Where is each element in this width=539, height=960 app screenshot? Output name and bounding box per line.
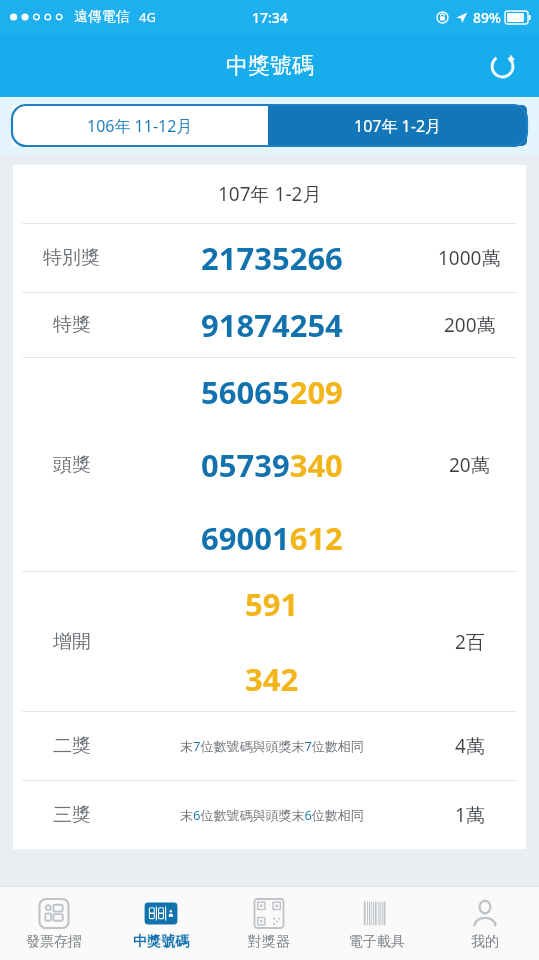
staticText: 電子載具 — [349, 933, 405, 951]
staticText: 107年 1-2月 — [218, 181, 322, 207]
staticText: 56065209 — [201, 371, 343, 413]
button[interactable]: 特獎 — [13, 293, 526, 357]
staticText: 2百 — [455, 629, 485, 655]
staticText: 我的 — [471, 933, 499, 951]
staticText: 二獎 — [53, 734, 91, 758]
button[interactable]: 我的 — [431, 887, 539, 960]
staticText: 107年 1-2月 — [354, 115, 442, 137]
button[interactable]: 增開 — [13, 572, 526, 711]
staticText: 對獎器 — [248, 933, 290, 951]
staticText: 05739340 — [201, 444, 343, 486]
staticText: 遠傳電信 — [74, 8, 130, 26]
staticText: 21735266 — [201, 237, 343, 279]
button[interactable]: 電子載具 — [323, 887, 431, 960]
button[interactable]: Refresh — [481, 45, 523, 87]
staticText: 591 — [245, 583, 299, 625]
button[interactable]: 二獎 — [13, 712, 526, 780]
button[interactable]: 107年 1-2月 — [268, 105, 527, 146]
staticText: 1萬 — [455, 802, 485, 828]
staticText: 中獎號碼 — [226, 52, 314, 80]
staticText: 342 — [245, 658, 299, 700]
staticText: 4萬 — [455, 733, 485, 759]
staticText: 91874254 — [201, 304, 343, 346]
staticText: 17:34 — [252, 8, 288, 27]
staticText: 頭獎 — [53, 453, 91, 477]
staticText: 增開 — [53, 630, 91, 654]
staticText: 20萬 — [449, 452, 490, 478]
button[interactable]: 頭獎 — [13, 358, 526, 571]
staticText: 69001612 — [201, 517, 343, 559]
staticText: 三獎 — [53, 803, 91, 827]
staticText: 發票存摺 — [26, 933, 82, 951]
button[interactable]: 中獎號碼 — [107, 887, 215, 960]
staticText: 106年 11-12月 — [87, 115, 193, 137]
staticText: 4G — [139, 8, 156, 26]
button[interactable]: 對獎器 — [215, 887, 323, 960]
staticText: 89% — [473, 8, 501, 27]
staticText: 末7位數號碼與頭獎末7位數相同 — [180, 737, 364, 755]
staticText: 末6位數號碼與頭獎末6位數相同 — [180, 806, 364, 824]
staticText: 中獎號碼 — [133, 933, 189, 951]
button[interactable]: 三獎 — [13, 781, 526, 849]
staticText: 200萬 — [444, 312, 496, 338]
staticText: 特別獎 — [43, 246, 100, 270]
button[interactable]: 106年 11-12月 — [12, 105, 268, 146]
button[interactable]: 發票存摺 — [0, 887, 107, 960]
staticText: 1000萬 — [438, 245, 501, 271]
button[interactable]: 特別獎 — [13, 224, 526, 292]
staticText: 特獎 — [53, 313, 91, 337]
